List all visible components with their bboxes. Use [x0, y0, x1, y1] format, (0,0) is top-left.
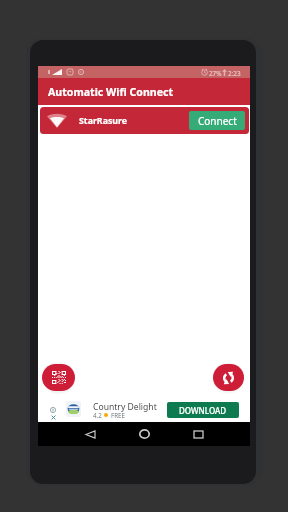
button[interactable]: Refresh — [213, 364, 244, 391]
button[interactable]: Recent apps — [184, 422, 212, 446]
staticText: 2:23 — [228, 69, 241, 78]
staticText: DOWNLOAD — [179, 405, 227, 416]
staticText: 27% — [209, 69, 222, 78]
button[interactable]: Scan QR code — [42, 364, 75, 391]
staticText: StarRasure — [79, 115, 128, 127]
button[interactable]: Back — [76, 422, 104, 446]
button[interactable]: DOWNLOAD — [167, 402, 239, 418]
staticText: Automatic Wifi Connect — [48, 85, 174, 99]
staticText: FREE — [111, 411, 125, 419]
staticText: 4.2 — [93, 411, 102, 419]
button[interactable]: StarRasure — [40, 107, 249, 134]
staticText: Country Delight — [93, 401, 157, 413]
button[interactable]: Connect — [189, 111, 245, 130]
staticText: Connect — [198, 114, 237, 128]
button[interactable]: Home — [130, 422, 158, 446]
